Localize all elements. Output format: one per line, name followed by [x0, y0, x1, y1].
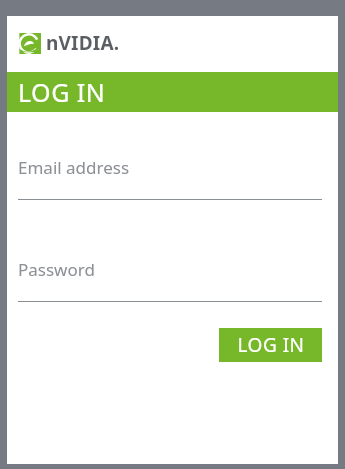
button[interactable]: LOG IN — [219, 328, 322, 362]
staticText: LOG IN — [237, 332, 305, 358]
button[interactable]: Email address — [18, 156, 322, 178]
staticText: LOG IN — [18, 75, 106, 109]
button[interactable]: Password — [18, 258, 322, 280]
staticText: Email address — [18, 156, 130, 178]
button[interactable]: LOG IN — [7, 72, 338, 112]
other: NVIDIA logo — [18, 33, 41, 54]
staticText: nVIDIA. — [46, 30, 120, 56]
staticText: Password — [18, 258, 95, 280]
